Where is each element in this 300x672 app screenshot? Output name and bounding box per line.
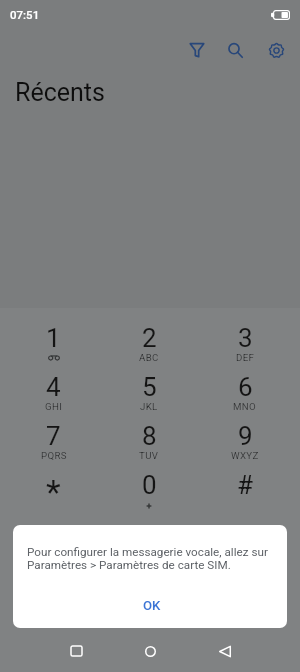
staticText: * [46, 472, 61, 512]
button[interactable]: 7 [6, 418, 101, 467]
staticText: 0 [142, 470, 157, 500]
button[interactable]: Back [205, 633, 245, 669]
button[interactable]: 3 [197, 320, 293, 369]
button[interactable]: Filter [183, 36, 211, 64]
staticText: DEF [236, 352, 255, 363]
staticText: GHI [45, 401, 63, 412]
button[interactable]: 9 [197, 418, 293, 467]
staticText: MNO [233, 401, 257, 412]
staticText: 6 [238, 372, 253, 402]
button[interactable]: # [197, 467, 293, 516]
staticText: # [237, 470, 254, 500]
staticText: PQRS [41, 450, 67, 461]
button[interactable]: 8 [101, 418, 197, 467]
button[interactable]: 4 [6, 369, 101, 418]
button[interactable]: * [6, 467, 101, 516]
button[interactable]: Home [130, 633, 170, 669]
button[interactable]: 5 [101, 369, 197, 418]
staticText: 7 [46, 421, 61, 451]
button[interactable]: Settings [262, 36, 290, 64]
staticText: 3 [238, 323, 253, 353]
button[interactable]: OK [133, 592, 171, 618]
staticText: ABC [139, 352, 159, 363]
staticText: 8 [142, 421, 157, 451]
staticText: 07:51 [10, 8, 40, 21]
button[interactable]: Recent apps [56, 633, 96, 669]
staticText: 9 [238, 421, 253, 451]
staticText: WXYZ [231, 450, 259, 461]
staticText: OK [143, 598, 161, 613]
button[interactable]: 0 [101, 467, 197, 516]
staticText: 2 [142, 323, 157, 353]
staticText: 1 [46, 323, 61, 353]
staticText: 5 [142, 372, 157, 402]
button[interactable]: 6 [197, 369, 293, 418]
staticText: Récents [15, 78, 105, 107]
staticText: Pour configurer la messagerie vocale, al… [27, 545, 273, 572]
button[interactable]: 1 [6, 320, 101, 369]
button[interactable]: 2 [101, 320, 197, 369]
staticText: TUV [139, 450, 159, 461]
staticText: JKL [140, 401, 158, 412]
staticText: 4 [46, 372, 61, 402]
button[interactable]: Search [221, 36, 249, 64]
